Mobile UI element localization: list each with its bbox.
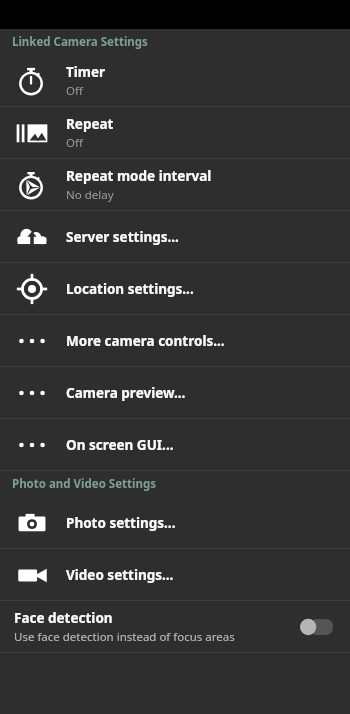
staticText: Off — [66, 135, 83, 151]
staticText: On screen GUI... — [66, 436, 174, 454]
button[interactable]: More camera controls... — [0, 315, 350, 366]
staticText: Repeat mode interval — [66, 167, 212, 185]
button[interactable]: On screen GUI... — [0, 419, 350, 470]
button[interactable]: Photo settings... — [0, 497, 350, 548]
button[interactable]: Video settings... — [0, 549, 350, 600]
staticText: Photo settings... — [66, 514, 176, 532]
button[interactable]: Timer — [0, 55, 350, 106]
button[interactable]: Location settings... — [0, 263, 350, 314]
button[interactable]: Server settings... — [0, 211, 350, 262]
staticText: Repeat — [66, 115, 114, 133]
staticText: Location settings... — [66, 280, 194, 298]
staticText: Use face detection instead of focus area… — [14, 629, 235, 645]
button[interactable]: Toggle face detection — [296, 613, 336, 641]
staticText: Timer — [66, 63, 106, 81]
staticText: Linked Camera Settings — [12, 34, 148, 50]
button[interactable]: Repeat mode interval — [0, 159, 350, 210]
button[interactable]: Repeat — [0, 107, 350, 158]
staticText: More camera controls... — [66, 332, 225, 350]
staticText: Camera preview... — [66, 384, 186, 402]
staticText: Photo and Video Settings — [12, 476, 156, 492]
staticText: Video settings... — [66, 566, 174, 584]
staticText: Off — [66, 83, 83, 99]
button[interactable]: Camera preview... — [0, 367, 350, 418]
staticText: No delay — [66, 187, 114, 203]
staticText: Face detection — [14, 609, 113, 627]
button[interactable]: Face detection — [0, 601, 350, 652]
staticText: Server settings... — [66, 228, 179, 246]
